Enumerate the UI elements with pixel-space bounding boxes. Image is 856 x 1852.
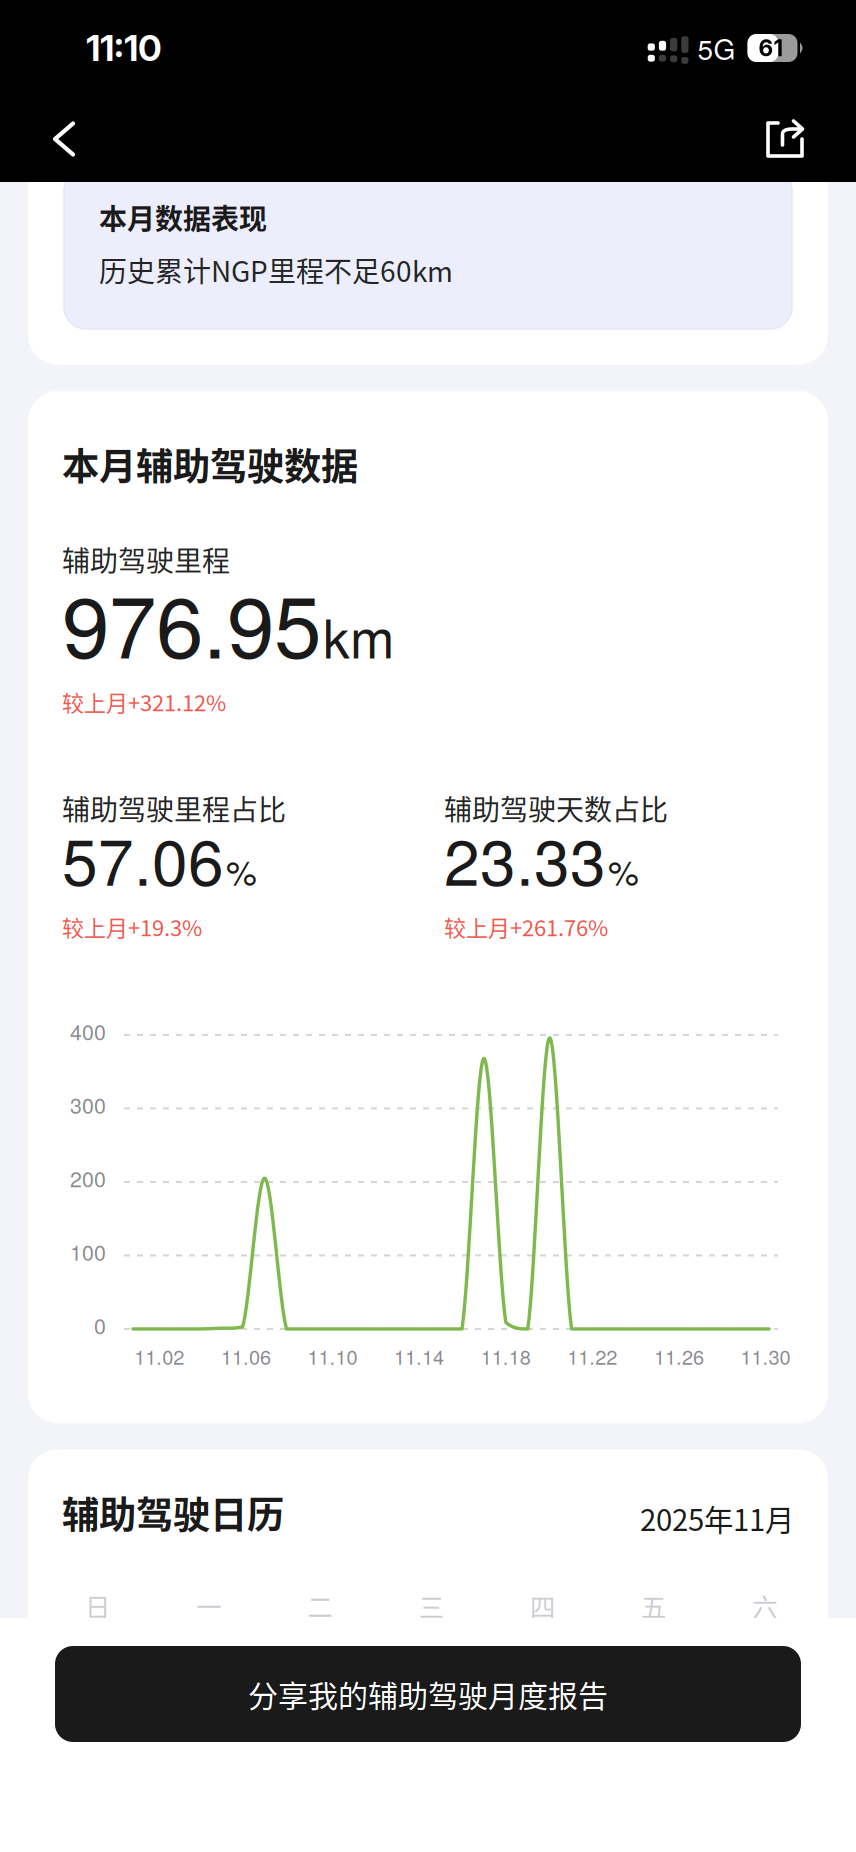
staticText: 400 <box>70 1016 106 1046</box>
staticText: 辅助驾驶里程占比 <box>62 788 286 828</box>
staticText: 本月辅助驾驶数据 <box>62 437 358 491</box>
staticText: 11.18 <box>481 1342 531 1370</box>
staticText: 0 <box>94 1310 106 1340</box>
staticText: % <box>608 846 639 895</box>
staticText: 历史累计NGP里程不足60km <box>99 249 453 290</box>
staticText: 三 <box>419 1587 444 1624</box>
staticText: 11.06 <box>221 1342 271 1370</box>
staticText: 二 <box>307 1587 332 1624</box>
staticText: 较上月+19.3% <box>62 911 202 943</box>
staticText: 2025年11月 <box>640 1497 794 1539</box>
staticText: 11.30 <box>740 1342 790 1370</box>
button[interactable]: 返回 <box>29 104 99 174</box>
staticText: 300 <box>70 1089 106 1120</box>
staticText: 辅助驾驶日历 <box>62 1485 284 1539</box>
staticText: 5G <box>697 28 735 68</box>
staticText: 一 <box>196 1587 221 1624</box>
staticText: 五 <box>641 1587 666 1624</box>
staticText: 11.10 <box>307 1342 357 1370</box>
staticText: 四 <box>530 1587 555 1624</box>
staticText: 23.33 <box>444 812 606 904</box>
staticText: km <box>323 597 394 674</box>
staticText: 200 <box>70 1163 106 1193</box>
staticText: 较上月+261.76% <box>444 911 608 943</box>
staticText: 976.95 <box>62 561 321 683</box>
staticText: 11:10 <box>86 26 162 70</box>
staticText: 六 <box>752 1587 777 1624</box>
staticText: 辅助驾驶里程 <box>62 539 230 580</box>
staticText: 11.02 <box>134 1342 184 1370</box>
staticText: % <box>226 846 257 895</box>
staticText: 11.22 <box>567 1342 617 1370</box>
staticText: 日 <box>85 1587 110 1624</box>
staticText: 100 <box>70 1236 106 1267</box>
staticText: 11.14 <box>394 1342 444 1370</box>
button[interactable]: 分享我的辅助驾驶月度报告 <box>55 1646 801 1742</box>
button[interactable]: 分享 <box>746 104 816 174</box>
staticText: 较上月+321.12% <box>62 686 226 718</box>
staticText: 61 <box>758 34 783 62</box>
staticText: 辅助驾驶天数占比 <box>444 788 668 828</box>
staticText: 本月数据表现 <box>99 197 267 237</box>
staticText: 分享我的辅助驾驶月度报告 <box>248 1672 608 1716</box>
staticText: 57.06 <box>62 812 224 904</box>
staticText: 11.26 <box>654 1342 704 1370</box>
